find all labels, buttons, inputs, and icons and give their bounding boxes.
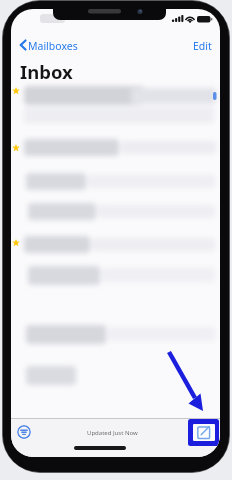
button[interactable] <box>11 350 220 403</box>
staticText: Edit <box>193 39 212 53</box>
staticText: Inbox <box>20 59 73 84</box>
staticText: Mailboxes <box>28 39 78 53</box>
staticText: Updated Just Now <box>87 429 138 437</box>
button[interactable] <box>17 425 31 439</box>
button[interactable] <box>11 244 220 297</box>
button[interactable] <box>188 419 219 446</box>
button[interactable]: Edit <box>193 39 212 53</box>
button[interactable] <box>11 85 220 138</box>
button[interactable] <box>11 138 220 191</box>
button[interactable] <box>11 191 220 244</box>
button[interactable]: Mailboxes <box>28 39 78 53</box>
button[interactable] <box>11 297 220 350</box>
